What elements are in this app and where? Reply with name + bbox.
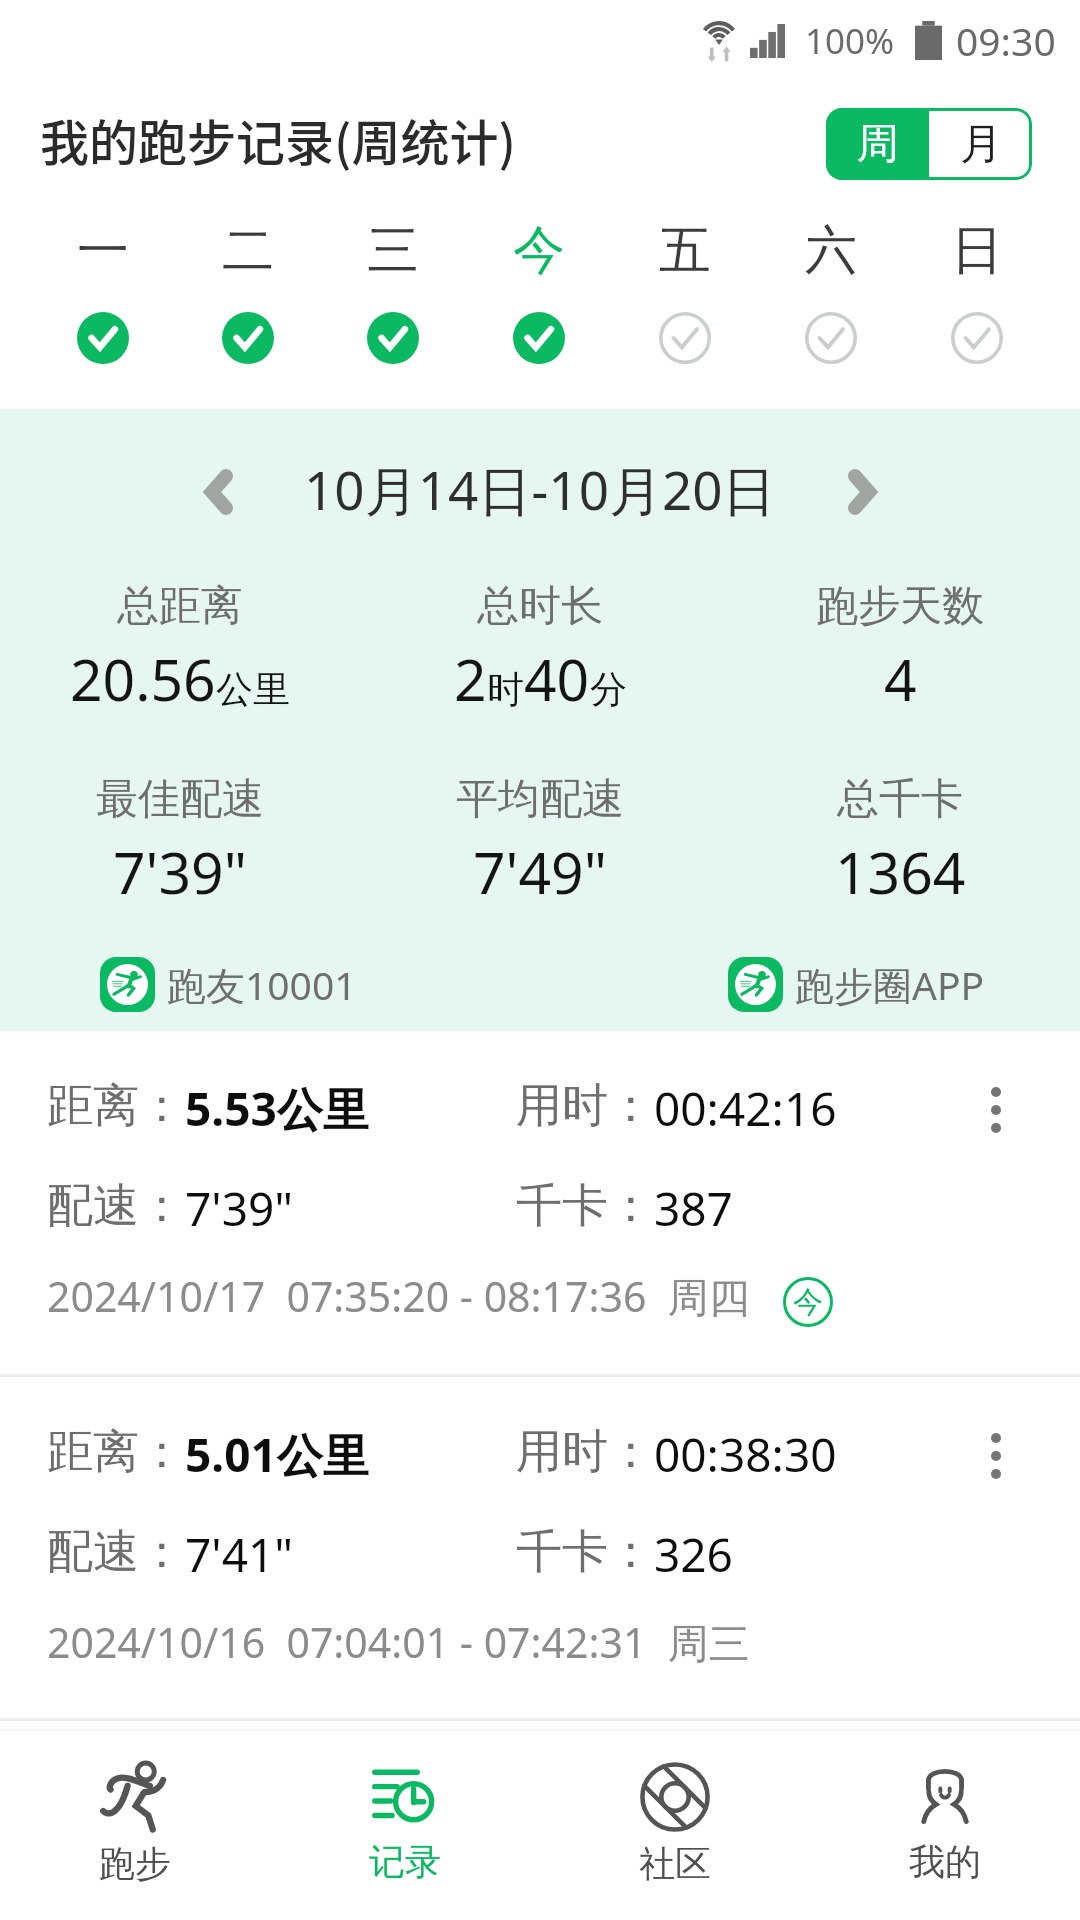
staticText: 用时： xyxy=(516,1423,654,1481)
staticText: 5.01公里 xyxy=(185,1423,369,1486)
staticText: 社区 xyxy=(639,1841,711,1886)
staticText: 配速： xyxy=(47,1177,185,1235)
staticText: 5.53公里 xyxy=(185,1077,369,1140)
staticText: 总千卡 xyxy=(837,773,963,826)
staticText: 跑步天数 xyxy=(816,580,984,633)
staticText: 10月14日-10月20日 xyxy=(304,453,776,525)
staticText: 00:42:16 xyxy=(654,1077,837,1140)
staticText: 总距离 xyxy=(117,580,243,633)
button[interactable]: More options xyxy=(971,1431,1021,1481)
staticText: 三 xyxy=(367,218,419,284)
staticText: 2024/10/16 07:04:01 - 07:42:31 周三 xyxy=(47,1614,750,1670)
button[interactable]: 我的 xyxy=(810,1731,1080,1920)
staticText: 千卡： xyxy=(516,1523,654,1581)
staticText: 今 xyxy=(793,1283,823,1321)
staticText: 4 xyxy=(884,640,917,718)
staticText: 总时长 xyxy=(477,580,603,633)
staticText: 1364 xyxy=(835,833,966,911)
button[interactable]: Next week xyxy=(824,454,900,530)
staticText: 五 xyxy=(659,218,711,284)
staticText: 2024/10/17 07:35:20 - 08:17:36 周四 xyxy=(47,1268,750,1324)
staticText: 40 xyxy=(524,640,590,718)
staticText: 100% xyxy=(805,17,895,65)
staticText: 我的 xyxy=(909,1839,981,1884)
staticText: 距离： xyxy=(47,1077,185,1135)
staticText: 跑友10001 xyxy=(167,958,357,1011)
button[interactable]: 日 xyxy=(904,218,1050,388)
staticText: 2 xyxy=(454,640,487,718)
staticText: 09:30 xyxy=(956,14,1056,67)
staticText: 我的跑步记录(周统计) xyxy=(40,104,516,175)
staticText: 记录 xyxy=(369,1839,441,1884)
staticText: 7'41" xyxy=(185,1523,294,1586)
button[interactable]: 五 xyxy=(612,218,758,388)
staticText: 7'39" xyxy=(185,1177,294,1240)
staticText: 一 xyxy=(77,218,129,284)
staticText: 387 xyxy=(654,1177,733,1240)
button[interactable]: 距离： xyxy=(0,1377,1080,1720)
staticText: 分 xyxy=(590,666,627,713)
button[interactable]: 记录 xyxy=(270,1731,540,1920)
staticText: 距离： xyxy=(47,1423,185,1481)
staticText: 周 xyxy=(857,118,899,171)
staticText: 配速： xyxy=(47,1523,185,1581)
button[interactable]: 社区 xyxy=(540,1731,810,1920)
button[interactable]: 跑步圈APP xyxy=(728,957,985,1012)
staticText: 公里 xyxy=(216,666,290,713)
button[interactable]: 今 xyxy=(466,218,612,388)
staticText: 跑步 xyxy=(99,1841,171,1886)
staticText: 用时： xyxy=(516,1077,654,1135)
button[interactable]: 跑步 xyxy=(0,1731,270,1920)
staticText: 20.56 xyxy=(70,640,216,718)
button[interactable]: Previous week xyxy=(180,454,256,530)
button[interactable]: 一 xyxy=(30,218,175,388)
button[interactable]: 周 xyxy=(826,108,929,180)
staticText: 最佳配速 xyxy=(96,773,264,826)
button[interactable]: 月 xyxy=(929,108,1032,180)
button[interactable]: 三 xyxy=(320,218,466,388)
button[interactable]: More options xyxy=(971,1085,1021,1135)
button[interactable]: 距离： xyxy=(0,1031,1080,1374)
button[interactable]: 跑友10001 xyxy=(100,957,357,1012)
staticText: 日 xyxy=(951,218,1003,284)
staticText: 7'49" xyxy=(473,833,607,911)
staticText: 六 xyxy=(805,218,857,284)
staticText: 跑步圈APP xyxy=(795,958,985,1011)
staticText: 今 xyxy=(513,218,565,284)
button[interactable]: 六 xyxy=(758,218,904,388)
staticText: 00:38:30 xyxy=(654,1423,837,1486)
staticText: 千卡： xyxy=(516,1177,654,1235)
staticText: 平均配速 xyxy=(456,773,624,826)
button[interactable]: 二 xyxy=(175,218,320,388)
staticText: 7'39" xyxy=(113,833,247,911)
staticText: 326 xyxy=(654,1523,733,1586)
staticText: 二 xyxy=(222,218,274,284)
staticText: 时 xyxy=(487,666,524,713)
staticText: 月 xyxy=(960,118,1002,171)
